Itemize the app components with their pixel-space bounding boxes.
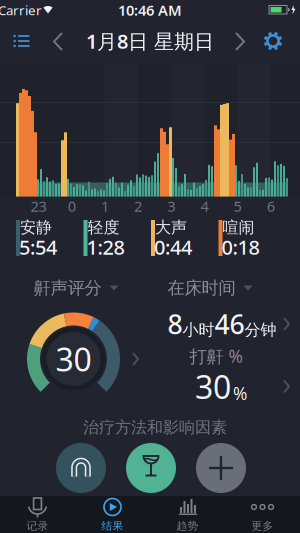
staticText: 5: [234, 196, 242, 216]
staticText: Carrier: [0, 1, 42, 19]
button[interactable]: Time in bed details: [165, 310, 295, 338]
button[interactable]: Trends: [150, 496, 225, 533]
staticText: 23: [30, 196, 46, 216]
staticText: 0: [68, 196, 76, 216]
staticText: 趋势: [176, 519, 198, 532]
staticText: 鼾声评分: [33, 277, 101, 299]
staticText: 大声: [155, 218, 187, 237]
button[interactable]: Add remedy or factor: [196, 443, 246, 493]
staticText: 喧闹: [222, 218, 254, 237]
staticText: 更多: [251, 519, 273, 532]
staticText: %: [233, 382, 247, 405]
staticText: 46: [214, 306, 244, 342]
staticText: 30: [195, 365, 231, 408]
staticText: 轻度: [87, 218, 119, 237]
staticText: 3: [167, 196, 175, 216]
staticText: 10:46 AM: [118, 0, 182, 20]
staticText: 30: [55, 338, 91, 380]
staticText: 8: [167, 306, 182, 342]
staticText: 1月8日 星期日: [86, 28, 214, 54]
button[interactable]: 在床时间: [167, 278, 252, 298]
staticText: 小时: [182, 320, 214, 340]
button[interactable]: Snore score details: [24, 303, 150, 413]
button[interactable]: Previous day: [43, 26, 73, 56]
staticText: 安静: [20, 218, 52, 237]
staticText: 0:44: [154, 234, 192, 260]
button[interactable]: 鼾声评分: [33, 278, 118, 298]
button[interactable]: Settings: [258, 26, 288, 56]
staticText: 记录: [26, 519, 48, 532]
button[interactable]: Next day: [225, 26, 255, 56]
staticText: 2: [134, 196, 142, 216]
staticText: 1: [101, 196, 109, 216]
button[interactable]: Sessions list: [8, 26, 38, 56]
staticText: 5:54: [19, 234, 57, 260]
button[interactable]: Alcohol factor: [126, 443, 176, 493]
staticText: 4: [200, 196, 208, 216]
staticText: 结果: [101, 519, 123, 532]
button[interactable]: Results: [75, 496, 150, 533]
button[interactable]: Snore percentage details: [165, 371, 295, 401]
staticText: 分钟: [244, 320, 276, 340]
staticText: 6: [267, 196, 275, 216]
staticText: 治疗方法和影响因素: [83, 418, 227, 437]
staticText: 打鼾 %: [189, 344, 242, 367]
staticText: 1:28: [86, 234, 124, 260]
button[interactable]: Nasal strip remedy: [56, 443, 106, 493]
button[interactable]: More: [225, 496, 300, 533]
staticText: 在床时间: [167, 277, 235, 299]
button[interactable]: Record: [0, 496, 75, 533]
staticText: 0:18: [221, 234, 259, 260]
